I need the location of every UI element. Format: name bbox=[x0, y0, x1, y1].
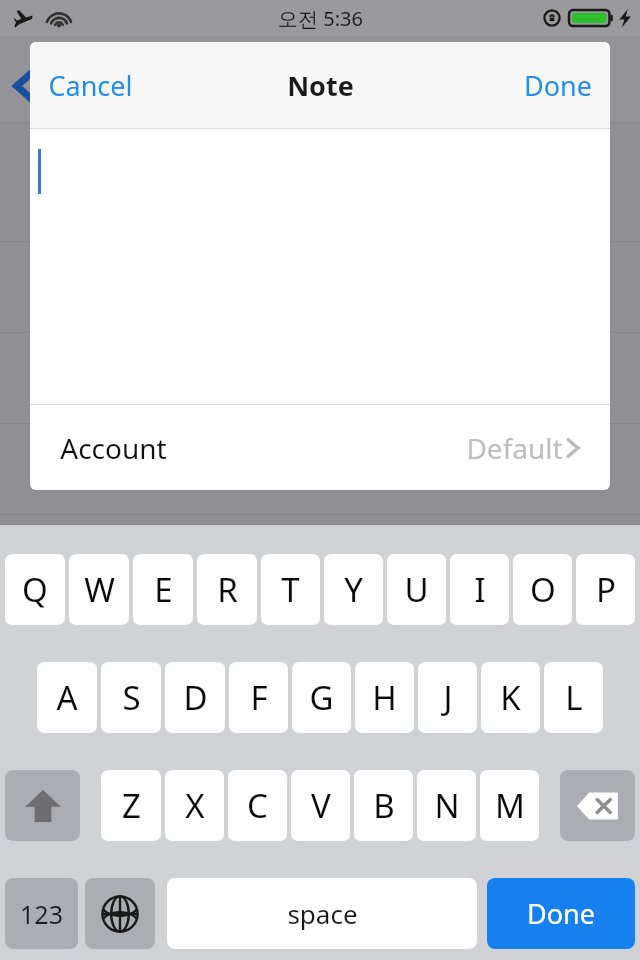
button[interactable]: space bbox=[167, 878, 477, 949]
staticText: E bbox=[154, 567, 173, 612]
staticText: Y bbox=[344, 567, 363, 612]
button[interactable]: E bbox=[133, 554, 193, 625]
staticText: Default bbox=[466, 429, 563, 467]
staticText: A bbox=[56, 675, 78, 720]
button[interactable]: N bbox=[417, 770, 476, 841]
button[interactable]: Change keyboard language bbox=[85, 878, 155, 949]
button[interactable]: F bbox=[229, 662, 288, 733]
staticText: C bbox=[247, 783, 268, 828]
staticText: O bbox=[530, 567, 556, 612]
staticText: F bbox=[250, 675, 268, 720]
button[interactable]: Shift bbox=[5, 770, 80, 841]
button[interactable]: K bbox=[481, 662, 540, 733]
staticText: L bbox=[565, 675, 583, 720]
button[interactable]: D bbox=[165, 662, 225, 733]
staticText: Q bbox=[22, 567, 48, 612]
button[interactable]: L bbox=[544, 662, 603, 733]
staticText: Done bbox=[527, 895, 595, 932]
button[interactable]: P bbox=[576, 554, 635, 625]
staticText: G bbox=[309, 675, 334, 720]
staticText: B bbox=[373, 783, 395, 828]
staticText: T bbox=[281, 567, 300, 612]
button[interactable]: J bbox=[418, 662, 477, 733]
staticText: H bbox=[372, 675, 397, 720]
staticText: J bbox=[443, 675, 453, 720]
staticText: M bbox=[495, 783, 525, 828]
staticText: 123 bbox=[20, 897, 63, 931]
button[interactable]: I bbox=[450, 554, 509, 625]
staticText: N bbox=[434, 783, 460, 828]
staticText: I bbox=[474, 567, 486, 612]
button[interactable]: Cancel bbox=[30, 53, 151, 118]
staticText: U bbox=[404, 567, 429, 612]
staticText: Note bbox=[287, 67, 354, 104]
staticText: Account bbox=[60, 429, 167, 467]
staticText: Cancel bbox=[48, 67, 133, 104]
button[interactable]: X bbox=[165, 770, 224, 841]
button[interactable]: Y bbox=[324, 554, 383, 625]
staticText: Done bbox=[524, 67, 592, 104]
button[interactable]: Account bbox=[30, 405, 610, 490]
button[interactable]: Backspace bbox=[560, 770, 635, 841]
staticText: S bbox=[122, 675, 141, 720]
button[interactable]: O bbox=[513, 554, 572, 625]
button[interactable]: 123 bbox=[5, 878, 78, 949]
button[interactable]: M bbox=[480, 770, 539, 841]
button[interactable]: T bbox=[261, 554, 320, 625]
button[interactable]: R bbox=[197, 554, 257, 625]
staticText: 오전 5:36 bbox=[278, 5, 363, 32]
button[interactable]: G bbox=[292, 662, 351, 733]
staticText: W bbox=[84, 567, 115, 612]
button[interactable]: U bbox=[387, 554, 446, 625]
staticText: P bbox=[596, 567, 616, 612]
staticText: space bbox=[287, 896, 358, 931]
staticText: D bbox=[183, 675, 208, 720]
button[interactable]: Done bbox=[487, 878, 635, 949]
button[interactable]: W bbox=[69, 554, 129, 625]
button[interactable] bbox=[30, 129, 610, 404]
button[interactable]: V bbox=[291, 770, 350, 841]
staticText: X bbox=[185, 783, 205, 828]
staticText: R bbox=[217, 567, 238, 612]
staticText: Z bbox=[122, 783, 141, 828]
button[interactable]: Z bbox=[101, 770, 161, 841]
button[interactable]: C bbox=[228, 770, 287, 841]
button[interactable]: B bbox=[354, 770, 413, 841]
button[interactable]: Q bbox=[5, 554, 65, 625]
other: Back bbox=[14, 66, 36, 106]
button[interactable]: S bbox=[101, 662, 161, 733]
button[interactable]: A bbox=[37, 662, 97, 733]
staticText: K bbox=[500, 675, 521, 720]
staticText: V bbox=[311, 783, 331, 828]
button[interactable]: Done bbox=[506, 53, 610, 118]
button[interactable]: H bbox=[355, 662, 414, 733]
